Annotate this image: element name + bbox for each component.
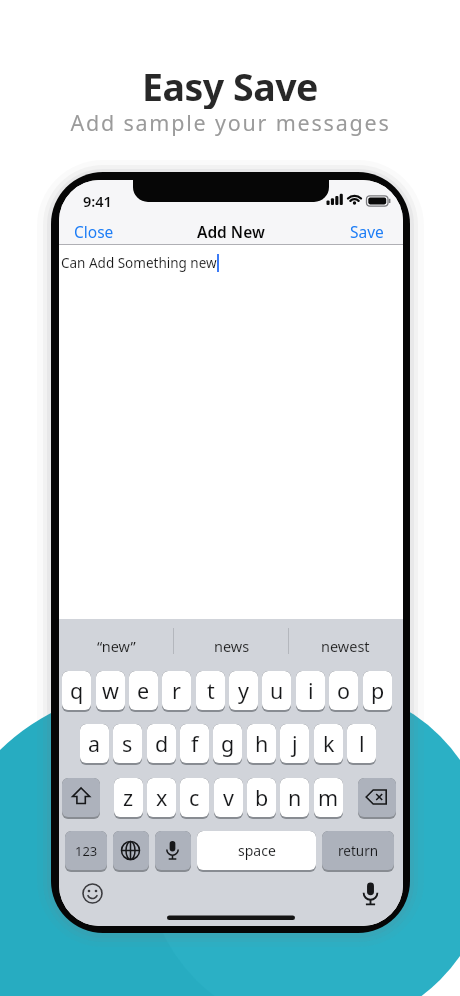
staticText: newest: [321, 636, 370, 656]
button[interactable]: return: [322, 831, 394, 872]
staticText: Add sample your messages: [70, 108, 391, 137]
staticText: c: [189, 783, 200, 812]
staticText: news: [214, 636, 250, 656]
staticText: l: [359, 729, 365, 758]
staticText: y: [238, 676, 249, 705]
button[interactable]: k: [314, 724, 343, 765]
button[interactable]: x: [147, 778, 176, 819]
button[interactable]: s: [113, 724, 142, 765]
staticText: 9:41: [83, 191, 112, 211]
staticText: o: [337, 676, 351, 705]
button[interactable]: z: [114, 778, 143, 819]
staticText: Easy Save: [142, 61, 318, 109]
button[interactable]: y: [229, 671, 258, 712]
button[interactable]: [62, 778, 100, 819]
staticText: u: [270, 676, 284, 705]
staticText: 123: [75, 842, 98, 860]
button[interactable]: q: [62, 671, 91, 712]
button[interactable]: r: [162, 671, 191, 712]
staticText: Can Add Something new: [61, 254, 217, 272]
staticText: f: [191, 729, 199, 758]
button[interactable]: space: [197, 831, 316, 872]
button[interactable]: b: [247, 778, 276, 819]
staticText: k: [323, 729, 335, 758]
staticText: Close: [74, 221, 114, 242]
staticText: e: [137, 676, 150, 705]
button[interactable]: newest: [288, 632, 403, 660]
button[interactable]: Close: [67, 219, 121, 243]
button[interactable]: u: [262, 671, 291, 712]
staticText: i: [308, 676, 314, 705]
button[interactable]: p: [363, 671, 392, 712]
staticText: h: [255, 729, 269, 758]
button[interactable]: l: [347, 724, 376, 765]
staticText: w: [102, 676, 119, 705]
staticText: r: [172, 676, 181, 705]
button[interactable]: g: [213, 724, 242, 765]
staticText: z: [123, 783, 134, 812]
staticText: t: [207, 676, 215, 705]
button[interactable]: i: [296, 671, 325, 712]
button[interactable]: [113, 831, 149, 872]
button[interactable]: j: [280, 724, 309, 765]
staticText: space: [238, 841, 276, 860]
button[interactable]: [357, 880, 385, 908]
staticText: b: [255, 783, 269, 812]
button[interactable]: o: [329, 671, 358, 712]
staticText: q: [70, 676, 84, 705]
staticText: d: [155, 729, 169, 758]
button[interactable]: f: [180, 724, 209, 765]
button[interactable]: “new”: [59, 632, 174, 660]
staticText: s: [122, 729, 133, 758]
button[interactable]: t: [196, 671, 225, 712]
button[interactable]: a: [80, 724, 109, 765]
button[interactable]: 123: [65, 831, 107, 872]
staticText: p: [371, 676, 385, 705]
button[interactable]: [79, 880, 107, 908]
button[interactable]: m: [314, 778, 343, 819]
button[interactable]: news: [174, 632, 289, 660]
staticText: “new”: [97, 636, 136, 656]
button[interactable]: [155, 831, 191, 872]
staticText: n: [288, 783, 302, 812]
button[interactable]: d: [147, 724, 176, 765]
staticText: j: [292, 729, 298, 758]
button[interactable]: w: [96, 671, 125, 712]
staticText: a: [88, 729, 101, 758]
button[interactable]: Save: [342, 219, 392, 243]
staticText: v: [223, 783, 234, 812]
button[interactable]: h: [247, 724, 276, 765]
button[interactable]: c: [180, 778, 209, 819]
button[interactable]: n: [280, 778, 309, 819]
staticText: x: [156, 783, 168, 812]
button[interactable]: v: [214, 778, 243, 819]
staticText: m: [318, 783, 339, 812]
staticText: Save: [350, 221, 384, 242]
button[interactable]: [358, 778, 396, 819]
button[interactable]: e: [129, 671, 158, 712]
staticText: g: [221, 729, 235, 758]
staticText: Add New: [197, 221, 265, 242]
staticText: return: [338, 842, 379, 860]
